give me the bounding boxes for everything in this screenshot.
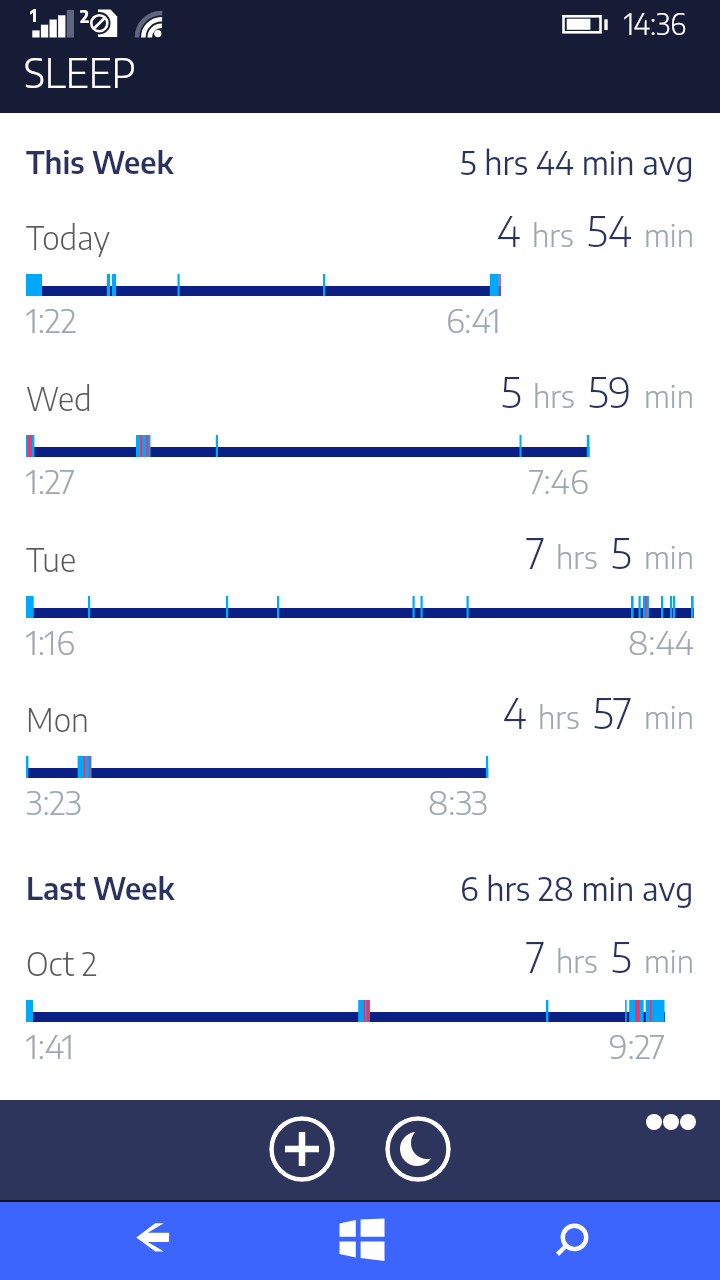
button[interactable]: Home bbox=[322, 1204, 402, 1278]
staticText: hrs bbox=[538, 697, 580, 736]
button[interactable]: Today bbox=[0, 217, 720, 337]
staticText: 1:41 bbox=[26, 1025, 74, 1066]
staticText: 5 bbox=[611, 527, 632, 578]
staticText: hrs bbox=[532, 215, 574, 254]
button[interactable]: More options bbox=[645, 1108, 697, 1136]
staticText: 5 hrs 44 min avg bbox=[460, 142, 694, 182]
staticText: 1 bbox=[30, 4, 38, 25]
button[interactable]: Tue bbox=[0, 539, 720, 659]
staticText: Mon bbox=[26, 699, 89, 739]
button[interactable]: Wed bbox=[0, 378, 720, 498]
staticText: 6 hrs 28 min avg bbox=[460, 868, 694, 908]
button[interactable]: Sleep mode bbox=[385, 1116, 451, 1182]
button[interactable]: Search bbox=[535, 1201, 615, 1275]
staticText: 4 bbox=[503, 687, 527, 738]
staticText: min bbox=[644, 537, 694, 576]
staticText: min bbox=[644, 376, 694, 415]
staticText: Tue bbox=[26, 539, 77, 579]
staticText: 14:36 bbox=[624, 6, 686, 41]
staticText: 7 bbox=[526, 527, 545, 578]
staticText: 6:41 bbox=[446, 299, 501, 340]
staticText: 9:27 bbox=[609, 1025, 665, 1066]
staticText: 4 bbox=[497, 205, 521, 256]
staticText: min bbox=[644, 941, 694, 980]
staticText: SLEEP bbox=[24, 47, 136, 97]
staticText: 54 bbox=[587, 205, 632, 256]
staticText: 2 bbox=[80, 5, 90, 26]
staticText: 1:22 bbox=[26, 299, 77, 340]
staticText: This Week bbox=[26, 143, 174, 180]
staticText: 59 bbox=[588, 366, 632, 417]
staticText: 1:16 bbox=[26, 621, 75, 662]
staticText: Today bbox=[26, 217, 110, 257]
staticText: 5 bbox=[611, 931, 632, 982]
button[interactable]: Back bbox=[113, 1201, 193, 1275]
staticText: 8:33 bbox=[428, 781, 488, 822]
staticText: 7 bbox=[526, 931, 545, 982]
button[interactable]: Add sleep record bbox=[269, 1116, 335, 1182]
staticText: hrs bbox=[556, 537, 598, 576]
button[interactable]: Mon bbox=[0, 699, 720, 819]
staticText: Last Week bbox=[26, 869, 175, 906]
staticText: 7:46 bbox=[529, 460, 589, 501]
staticText: min bbox=[644, 215, 694, 254]
staticText: 3:23 bbox=[26, 781, 82, 822]
staticText: 1:27 bbox=[26, 460, 75, 501]
staticText: hrs bbox=[533, 376, 575, 415]
staticText: Wed bbox=[26, 378, 92, 418]
staticText: Oct 2 bbox=[26, 943, 98, 983]
button[interactable]: Oct 2 bbox=[0, 943, 720, 1063]
staticText: hrs bbox=[556, 941, 598, 980]
staticText: 57 bbox=[593, 687, 632, 738]
staticText: min bbox=[644, 697, 694, 736]
staticText: 5 bbox=[501, 366, 522, 417]
staticText: 8:44 bbox=[628, 621, 694, 662]
